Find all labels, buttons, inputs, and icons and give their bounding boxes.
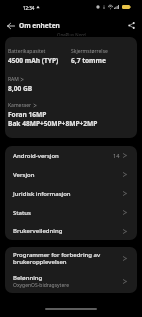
staticText: Juridisk informasjon — [13, 190, 122, 198]
staticText: 14 — [113, 152, 120, 160]
staticText: Batterikapasitet — [8, 48, 46, 55]
staticText: 4500 mAh (TYP) — [8, 56, 59, 65]
staticText: Programmer for forbedring av brukeropple… — [13, 251, 122, 266]
staticText: Skjermstørrelse — [71, 48, 108, 55]
staticText: 12:34 — [23, 5, 35, 11]
button[interactable]: Versjon — [5, 165, 137, 184]
staticText: Om enheten — [19, 21, 60, 30]
staticText: OnePlus Nord — [57, 32, 86, 36]
staticText: OxygenOS-bidragsytere — [13, 282, 69, 289]
button[interactable]: Status — [5, 203, 137, 222]
staticText: 8,00 GB — [8, 84, 33, 93]
button[interactable]: Share — [124, 18, 139, 33]
button[interactable]: Brukerveiledning — [5, 222, 137, 240]
staticText: Brukerveiledning — [13, 227, 122, 235]
staticText: Foran 16MP — [8, 110, 47, 119]
staticText: Kameraer — [8, 102, 32, 109]
button[interactable]: Programmer for forbedring av brukeropple… — [5, 247, 137, 270]
staticText: 6,7 tomme — [71, 56, 106, 65]
staticText: Status — [13, 209, 122, 217]
button[interactable]: Belønning — [5, 270, 137, 293]
button[interactable]: Back — [3, 18, 18, 33]
staticText: Android-versjon — [13, 152, 113, 160]
staticText: RAM — [8, 76, 19, 83]
staticText: Versjon — [13, 171, 122, 179]
staticText: Bak 48MP+50MP+8MP+2MP — [8, 119, 98, 128]
staticText: Belønning — [13, 274, 43, 282]
button[interactable]: Juridisk informasjon — [5, 184, 137, 203]
button[interactable]: Android-versjon — [5, 146, 137, 165]
